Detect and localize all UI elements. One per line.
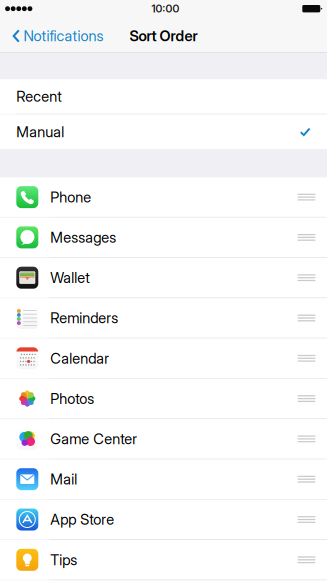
staticText: App Store [50,511,114,528]
button[interactable]: Tips [0,540,327,580]
button[interactable]: Game Center [0,419,327,459]
button[interactable]: Phone [0,177,327,217]
staticText: Photos [50,390,94,407]
staticText: 10:00 [151,2,179,15]
button[interactable]: App Store [0,500,327,539]
button[interactable]: Mail [0,459,327,499]
staticText: Phone [50,188,91,206]
staticText: Reminders [50,309,118,327]
staticText: Sort Order [129,27,197,45]
button[interactable]: Notifications [0,20,111,52]
staticText: Mail [50,470,77,488]
staticText: Manual [16,123,64,141]
staticText: Messages [50,228,116,246]
button[interactable]: Manual [0,114,327,149]
staticText: Calendar [50,349,109,367]
staticText: Game Center [50,430,137,448]
button[interactable]: Wallet [0,258,327,297]
button[interactable]: Messages [0,218,327,257]
staticText: Notifications [23,27,103,45]
staticText: Tips [50,551,77,569]
button[interactable]: Reminders [0,298,327,338]
button[interactable]: Photos [0,379,327,418]
staticText: Wallet [50,269,90,286]
staticText: Recent [16,88,62,105]
button[interactable]: Calendar [0,338,327,378]
button[interactable]: Recent [0,79,327,114]
